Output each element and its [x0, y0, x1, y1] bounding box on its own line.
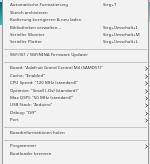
button[interactable]: Programmer [3, 143, 148, 150]
button[interactable]: WiFi101 / WiFiNINA Firmware Updater [3, 52, 148, 59]
staticText: Strg+Umschalt+M [103, 31, 140, 37]
button[interactable]: Serieller Plotter [3, 39, 148, 46]
button[interactable]: Kodierung korrigieren & neu laden [3, 17, 148, 24]
button[interactable]: Board: "Adafruit Grand Central M4 (SAMD5… [3, 65, 148, 72]
staticText: WiFi101 / WiFiNINA Firmware Updater [10, 51, 89, 57]
staticText: Bibliotheken verwalten... [10, 24, 62, 30]
staticText: Optimize: "Small (-Os) (standard)" [10, 87, 79, 93]
staticText: CPU Speed: "120 MHz (standard)" [10, 79, 79, 85]
staticText: Kodierung korrigieren & neu laden [10, 16, 82, 22]
button[interactable]: Automatische Formatierung [3, 2, 148, 9]
staticText: Port [10, 116, 19, 122]
staticText: Programmer [10, 142, 37, 148]
button[interactable]: Bootloader brennen [3, 151, 148, 158]
staticText: Strg+T [103, 1, 117, 7]
button[interactable]: Optimize: "Small (-Os) (standard)" [3, 88, 148, 95]
staticText: Boardinformationen holen [10, 129, 65, 135]
staticText: Strg+Umschalt+I [103, 24, 138, 30]
staticText: Board: "Adafruit Grand Central M4 (SAMD5… [10, 64, 104, 70]
staticText: Bootloader brennen [10, 150, 52, 156]
button[interactable]: Serieller Monitor [3, 32, 148, 39]
button[interactable]: Sketch archivieren [3, 10, 148, 17]
button[interactable]: Cache: "Enabled" [3, 73, 148, 80]
button[interactable]: Port [3, 117, 148, 124]
button[interactable]: Max QSPI: "50 MHz (standard)" [3, 95, 148, 102]
staticText: Serieller Plotter [10, 38, 42, 44]
button[interactable]: Bibliotheken verwalten... [3, 25, 148, 32]
staticText: Cache: "Enabled" [10, 72, 45, 78]
button[interactable]: USB Stack: "Arduino" [3, 102, 148, 109]
button[interactable]: CPU Speed: "120 MHz (standard)" [3, 80, 148, 87]
staticText: USB Stack: "Arduino" [10, 101, 53, 107]
staticText: Sketch archivieren [10, 9, 48, 15]
staticText: Max QSPI: "50 MHz (standard)" [10, 94, 74, 100]
staticText: Debug: "Off" [10, 109, 37, 115]
button[interactable]: Boardinformationen holen [3, 130, 148, 137]
staticText: Serieller Monitor [10, 31, 45, 37]
staticText: Strg+Umschalt+L [103, 38, 139, 44]
button[interactable]: Debug: "Off" [3, 110, 148, 117]
staticText: Automatische Formatierung [10, 1, 68, 7]
